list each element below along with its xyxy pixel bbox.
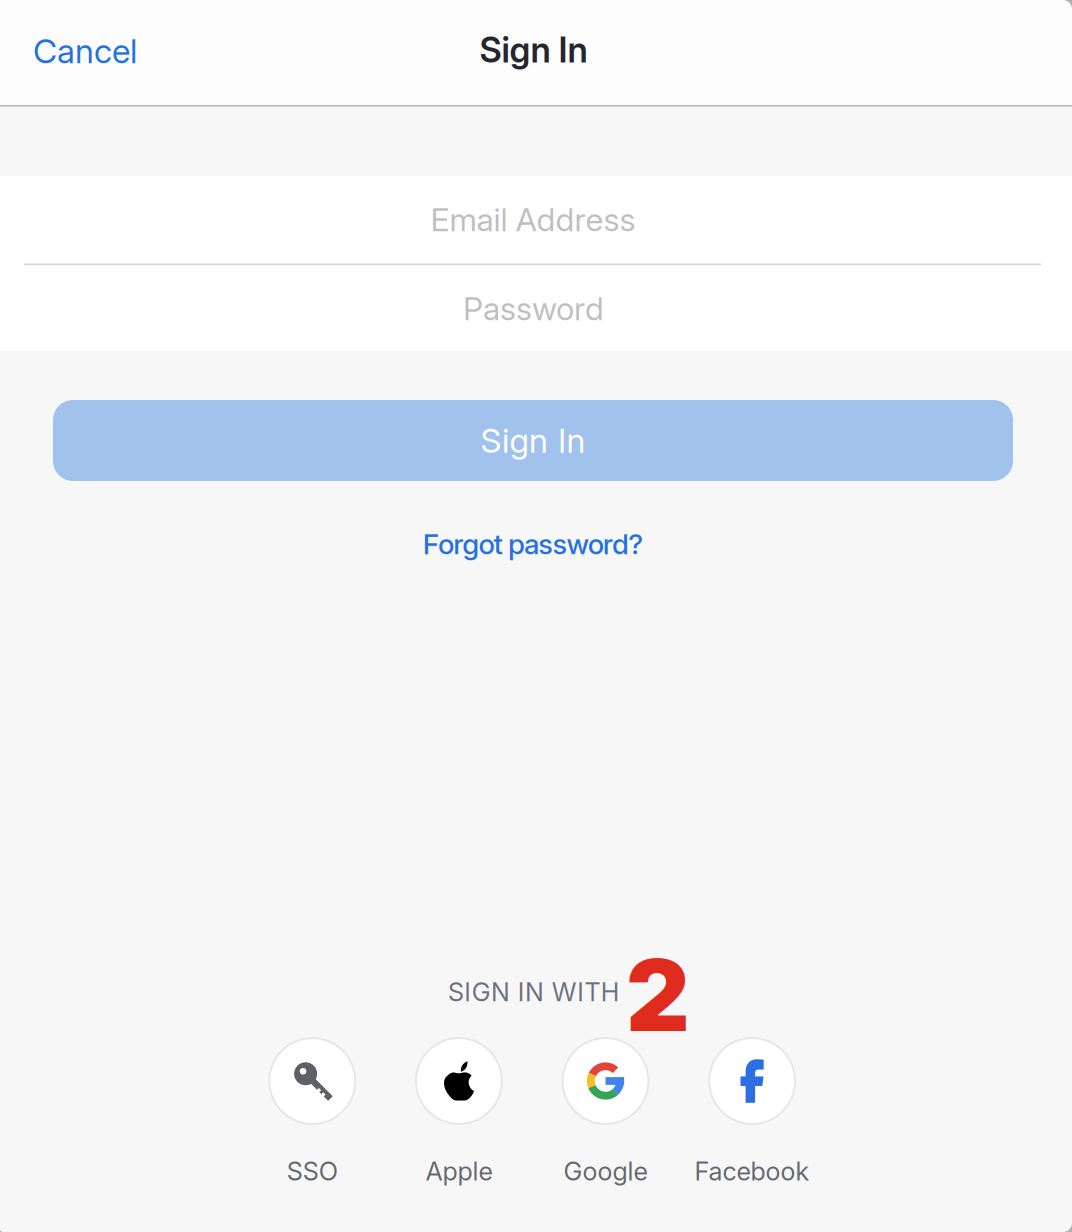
button[interactable]: Sign In [53, 400, 1013, 481]
button[interactable]: Google [532, 1037, 679, 1193]
staticText: Google [563, 1156, 647, 1187]
button[interactable]: Apple [386, 1037, 532, 1193]
button[interactable]: Cancel [33, 8, 183, 94]
button[interactable]: SSO [239, 1037, 386, 1193]
staticText: Cancel [33, 31, 137, 71]
staticText: Apple [425, 1156, 492, 1187]
staticText: Password [463, 289, 604, 328]
button[interactable]: Password [0, 265, 1069, 352]
button[interactable]: Forgot password? [353, 516, 713, 572]
button[interactable]: Facebook [679, 1037, 825, 1193]
staticText: Forgot password? [423, 527, 643, 561]
staticText: Facebook [695, 1156, 810, 1187]
staticText: Sign In [479, 29, 587, 71]
staticText: 2 [626, 935, 690, 1055]
staticText: Email Address [430, 200, 635, 239]
button[interactable]: Email Address [0, 175, 1069, 263]
staticText: SSO [287, 1156, 338, 1187]
staticText: Sign In [480, 420, 585, 461]
staticText: SIGN IN WITH [448, 977, 620, 1007]
